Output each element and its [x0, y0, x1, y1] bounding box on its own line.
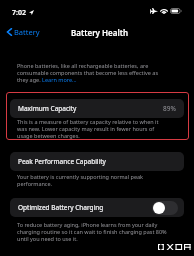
button[interactable]: Optimized Battery Charging [10, 198, 184, 217]
button[interactable]: Peak Performance Capability [10, 152, 184, 171]
staticText: Optimized Battery Charging [18, 203, 104, 212]
staticText: Your battery is currently supporting nor… [17, 173, 168, 187]
button[interactable]: Back to Battery [2, 24, 46, 40]
staticText: Battery Health [71, 27, 129, 38]
staticText: 89% [163, 104, 176, 113]
staticText: This is a measure of battery capacity re… [17, 118, 168, 139]
staticText: Maximum Capacity [18, 104, 77, 113]
staticText: Battery [14, 27, 40, 37]
staticText: Phone batteries, like all rechargeable b… [17, 62, 168, 83]
button[interactable]: Maximum Capacity [10, 99, 184, 118]
staticText: Peak Performance Capability [18, 157, 106, 166]
button[interactable]: Toggle Optimized Battery Charging [152, 201, 178, 215]
staticText: 7:02 [12, 8, 26, 18]
staticText: To reduce battery aging, iPhone learns f… [17, 221, 168, 242]
